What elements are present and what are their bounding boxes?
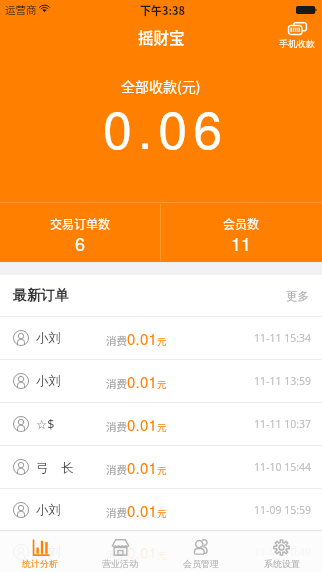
- staticText: 消费0.01元: [106, 457, 167, 478]
- button[interactable]: ☆$: [0, 403, 322, 445]
- button[interactable]: 弓 长: [0, 446, 322, 488]
- staticText: 0.06: [103, 89, 229, 163]
- staticText: 手机收款: [279, 38, 315, 49]
- staticText: 消费0.01元: [106, 371, 167, 392]
- button[interactable]: 小刘: [0, 317, 322, 359]
- staticText: 11-11 15:34: [254, 331, 311, 345]
- button[interactable]: 小刘: [0, 489, 322, 531]
- staticText: 消费0.01元: [106, 414, 167, 435]
- staticText: 6: [75, 230, 86, 256]
- staticText: ☆$: [36, 416, 55, 433]
- staticText: 营业活动: [102, 558, 138, 569]
- staticText: 小刘: [36, 502, 61, 518]
- staticText: 最新订单: [13, 287, 69, 305]
- button[interactable]: 小刘: [0, 532, 322, 572]
- staticText: 摇财宝: [138, 26, 185, 48]
- staticText: 11-10 15:44: [254, 460, 311, 474]
- staticText: 11-11 10:37: [254, 417, 311, 431]
- button[interactable]: 会员管理: [160, 531, 241, 572]
- staticText: 运营商: [5, 2, 37, 17]
- staticText: 系统设置: [264, 558, 300, 569]
- button[interactable]: 更多: [275, 283, 322, 309]
- staticText: 小刘: [36, 373, 61, 389]
- staticText: 交易订单数: [50, 215, 111, 232]
- button[interactable]: 小刘: [0, 360, 322, 402]
- button[interactable]: 手机收款: [277, 22, 317, 49]
- button[interactable]: 会员数: [161, 203, 322, 262]
- staticText: 消费0.01元: [106, 500, 167, 521]
- staticText: 小刘: [36, 544, 61, 560]
- staticText: 11-07 10:49: [254, 545, 311, 559]
- staticText: 会员管理: [183, 558, 219, 569]
- staticText: 11-11 13:59: [254, 374, 311, 388]
- staticText: 消费0.01元: [106, 542, 167, 563]
- staticText: 统计分析: [22, 558, 58, 569]
- staticText: 消费0.01元: [106, 328, 167, 349]
- button[interactable]: 系统设置: [241, 531, 322, 572]
- staticText: 更多: [286, 289, 309, 303]
- button[interactable]: 营业活动: [80, 531, 160, 572]
- staticText: 下午3:38: [140, 2, 186, 18]
- staticText: 11: [231, 230, 252, 256]
- button[interactable]: 统计分析: [0, 531, 80, 572]
- staticText: 11-09 15:59: [254, 503, 311, 517]
- staticText: 会员数: [223, 215, 260, 232]
- button[interactable]: 交易订单数: [0, 203, 160, 262]
- staticText: 弓 长: [36, 459, 74, 476]
- staticText: 小刘: [36, 330, 61, 346]
- staticText: 全部收款(元): [121, 76, 201, 96]
